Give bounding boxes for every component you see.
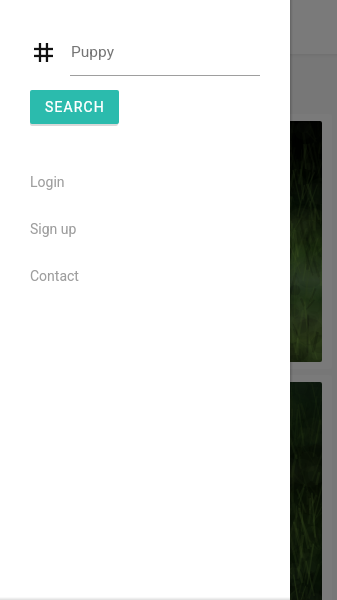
button[interactable]: Contact xyxy=(0,252,290,299)
staticText: Login xyxy=(30,174,65,190)
other: Tag xyxy=(34,43,53,62)
staticText: Sign up xyxy=(30,221,77,237)
staticText: SEARCH xyxy=(45,99,105,115)
button[interactable]: Login xyxy=(0,158,290,205)
button[interactable] xyxy=(5,375,332,600)
staticText: Puppy xyxy=(71,43,114,61)
button[interactable]: Sign up xyxy=(0,205,290,252)
button[interactable] xyxy=(5,114,332,369)
staticText: Contact xyxy=(30,268,79,284)
button[interactable]: SEARCH xyxy=(30,90,119,124)
